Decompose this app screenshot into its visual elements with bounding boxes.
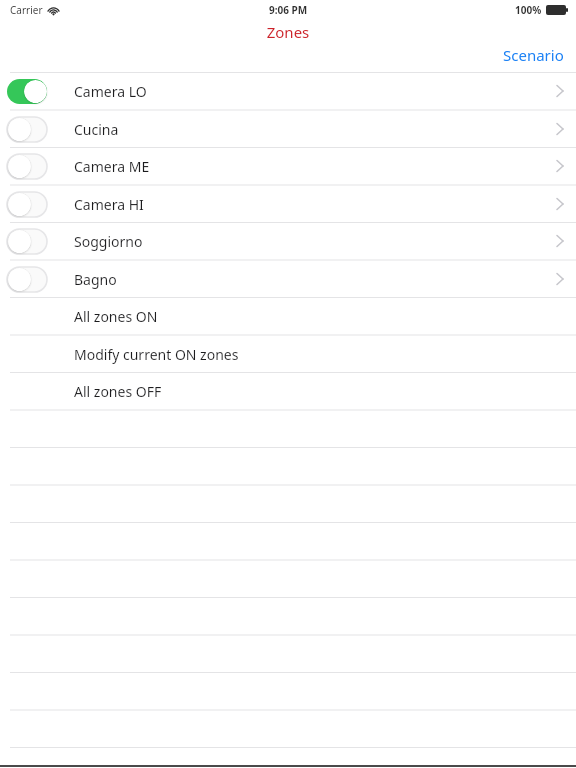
button[interactable]: Zone off: [0, 147, 576, 185]
staticText: All zones ON: [74, 307, 158, 326]
button[interactable]: Scenario: [491, 42, 576, 68]
button[interactable]: Zone on: [0, 72, 576, 110]
staticText: Camera LO: [74, 82, 147, 101]
staticText: Carrier: [10, 3, 43, 17]
button[interactable]: Zone off: [7, 229, 47, 254]
staticText: Soggiorno: [74, 232, 143, 251]
staticText: Modify current ON zones: [74, 345, 239, 364]
button[interactable]: Zone off: [7, 267, 47, 292]
staticText: Camera HI: [74, 195, 144, 214]
button[interactable]: Zone off: [7, 117, 47, 142]
button[interactable]: Zone off: [0, 260, 576, 298]
button[interactable]: Zone off: [0, 110, 576, 148]
staticText: All zones OFF: [74, 382, 162, 401]
button[interactable]: Zone on: [7, 79, 47, 104]
staticText: Camera ME: [74, 157, 150, 176]
button[interactable]: Zone off: [0, 222, 576, 260]
button[interactable]: Zone off: [0, 185, 576, 223]
staticText: Scenario: [503, 45, 564, 65]
staticText: Bagno: [74, 270, 117, 289]
staticText: 100%: [515, 3, 542, 17]
button[interactable]: All zones OFF: [0, 372, 576, 410]
button[interactable]: Modify current ON zones: [0, 335, 576, 373]
button[interactable]: Zone off: [7, 154, 47, 179]
staticText: Zones: [0, 22, 576, 42]
button[interactable]: All zones ON: [0, 297, 576, 335]
staticText: 9:06 PM: [269, 3, 308, 17]
staticText: Cucina: [74, 120, 119, 139]
button[interactable]: Zone off: [7, 192, 47, 217]
